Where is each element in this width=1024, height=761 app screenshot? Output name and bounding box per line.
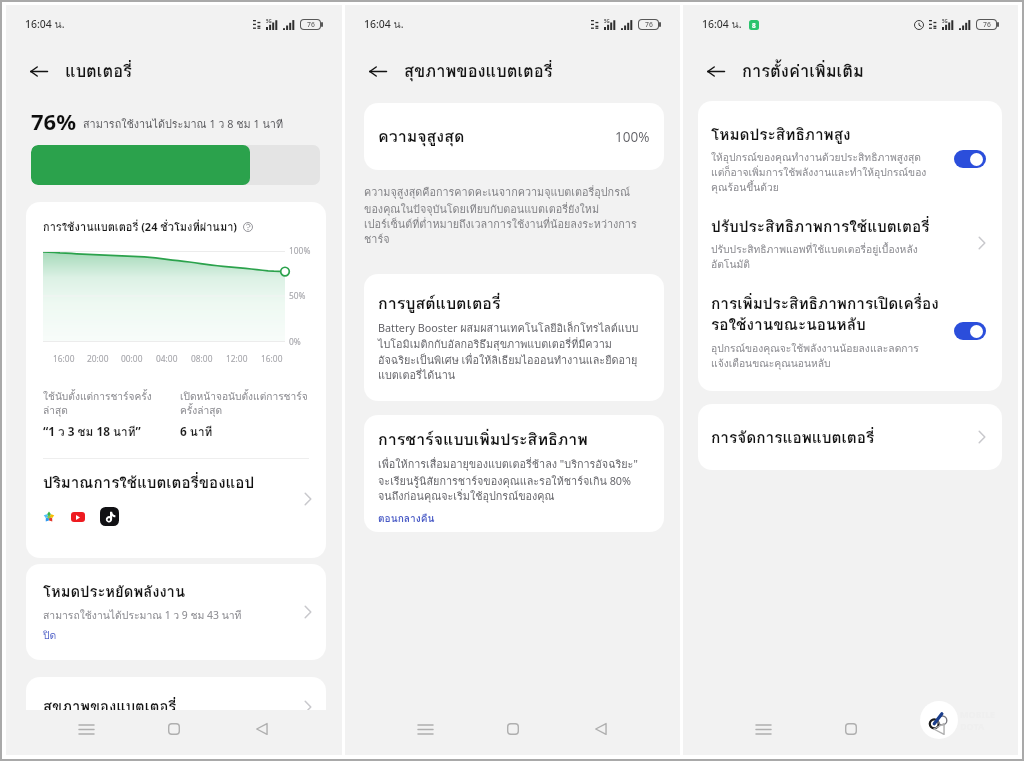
- button[interactable]: สุขภาพของแบตเตอรี่: [26, 677, 326, 743]
- button[interactable]: การชาร์จแบบเพิ่มประสิทธิภาพ: [364, 415, 664, 532]
- staticText: 8: [752, 21, 756, 30]
- staticText: ความจุสูงสุดคือการคาดคะเนจากความจุแบตเตอ…: [364, 184, 644, 248]
- button[interactable]: การเพิ่มประสิทธิภาพการเปิดเครื่องรอใช้งา…: [698, 291, 1002, 371]
- staticText: 76: [307, 20, 315, 29]
- button[interactable]: โหมดประสิทธิภาพสูง: [698, 122, 1002, 195]
- staticText: 76: [645, 20, 653, 29]
- staticText: 16:04 น.: [702, 16, 742, 33]
- button[interactable]: โหมดประหยัดพลังงาน: [26, 564, 326, 660]
- staticText: เพื่อให้การเสื่อมอายุของแบตเตอรี่ช้าลง "…: [378, 456, 645, 505]
- staticText: สามารถใช้งานได้ประมาณ 1 ว 9 ชม 43 นาที: [43, 607, 242, 624]
- staticText: การชาร์จแบบเพิ่มประสิทธิภาพ: [378, 427, 588, 452]
- staticText: อุปกรณ์ของคุณจะใช้พลังงานน้อยลงและลดการแ…: [711, 340, 932, 371]
- button[interactable]: Back: [364, 57, 392, 85]
- staticText: สุขภาพของแบตเตอรี่: [404, 58, 553, 84]
- staticText: 5G: [942, 18, 948, 24]
- staticText: 08:00: [191, 353, 213, 364]
- staticText: ปิด: [43, 627, 57, 644]
- button[interactable]: Home: [157, 712, 191, 746]
- staticText: 100%: [615, 128, 650, 146]
- button[interactable]: Recent apps: [746, 712, 780, 746]
- button[interactable]: Home: [496, 712, 530, 746]
- staticText: ปรับประสิทธิภาพการใช้แบตเตอรี่: [711, 214, 930, 238]
- button[interactable]: Recent apps: [408, 712, 442, 746]
- button[interactable]: Home: [834, 712, 868, 746]
- button[interactable]: Toggle on: [954, 150, 986, 168]
- staticText: 0%: [289, 336, 301, 347]
- staticText: ตอนกลางคืน: [378, 510, 435, 526]
- staticText: แบตเตอรี่: [65, 58, 132, 84]
- button[interactable]: Toggle on: [954, 322, 986, 340]
- button[interactable]: Back: [245, 712, 279, 746]
- button[interactable]: การบูสต์แบตเตอรี่: [364, 274, 664, 401]
- staticText: 76: [983, 20, 991, 29]
- button[interactable]: Back: [25, 57, 53, 85]
- button[interactable]: ปรับประสิทธิภาพการใช้แบตเตอรี่: [698, 214, 1002, 272]
- button[interactable]: Back: [702, 57, 730, 85]
- staticText: โหมดประหยัดพลังงาน: [43, 580, 186, 604]
- staticText: Battery Booster ผสมผสานเทคโนโลยีอิเล็กโท…: [378, 320, 645, 384]
- staticText: ให้อุปกรณ์ของคุณทำงานด้วยประสิทธิภาพสูงส…: [711, 149, 928, 195]
- staticText: 5G: [266, 18, 272, 24]
- staticText: 100%: [289, 245, 311, 256]
- staticText: ปรับประสิทธิภาพแอพที่ใช้แบตเตอรี่อยู่เบื…: [711, 241, 948, 272]
- staticText: 16:00: [53, 353, 75, 364]
- button[interactable]: การใช้งานแบตเตอรี่ (24 ชั่วโมงที่ผ่านมา): [26, 202, 326, 558]
- staticText: 00:00: [121, 353, 143, 364]
- button[interactable]: Back: [584, 712, 618, 746]
- staticText: 5G: [604, 18, 610, 24]
- button[interactable]: Back: [922, 712, 956, 746]
- staticText: 20:00: [87, 353, 109, 364]
- button[interactable]: การจัดการแอพแบตเตอรี่: [698, 404, 1002, 470]
- staticText: การเพิ่มประสิทธิภาพการเปิดเครื่องรอใช้งา…: [711, 291, 946, 337]
- staticText: สุขภาพของแบตเตอรี่: [43, 695, 304, 719]
- staticText: 16:00: [261, 353, 283, 364]
- staticText: การตั้งค่าเพิ่มเติม: [742, 58, 864, 84]
- staticText: โหมดประสิทธิภาพสูง: [711, 122, 851, 146]
- button[interactable]: ความจุสูงสุด: [364, 103, 664, 170]
- staticText: 04:00: [156, 353, 178, 364]
- staticText: 6 นาที: [180, 422, 213, 441]
- staticText: ความจุสูงสุด: [378, 124, 615, 149]
- staticText: 12:00: [226, 353, 248, 364]
- staticText: ใช้นับตั้งแต่การชาร์จครั้งล่าสุด: [43, 388, 153, 419]
- staticText: 50%: [289, 290, 306, 301]
- staticText: 16:04 น.: [25, 16, 65, 33]
- staticText: “1 ว 3 ชม 18 นาที”: [43, 422, 141, 441]
- staticText: เปิดหน้าจอนับตั้งแต่การชาร์จครั้งล่าสุด: [180, 388, 312, 419]
- staticText: 76%: [31, 106, 77, 136]
- staticText: การจัดการแอพแบตเตอรี่: [711, 425, 978, 449]
- staticText: การใช้งานแบตเตอรี่ (24 ชั่วโมงที่ผ่านมา): [43, 218, 238, 235]
- staticText: การบูสต์แบตเตอรี่: [378, 291, 501, 316]
- staticText: ปริมาณการใช้แบตเตอรี่ของแอป: [43, 471, 255, 495]
- button[interactable]: Recent apps: [69, 712, 103, 746]
- staticText: 16:04 น.: [364, 16, 404, 33]
- staticText: สามารถใช้งานได้ประมาณ 1 ว 8 ชม 1 นาที: [83, 116, 284, 133]
